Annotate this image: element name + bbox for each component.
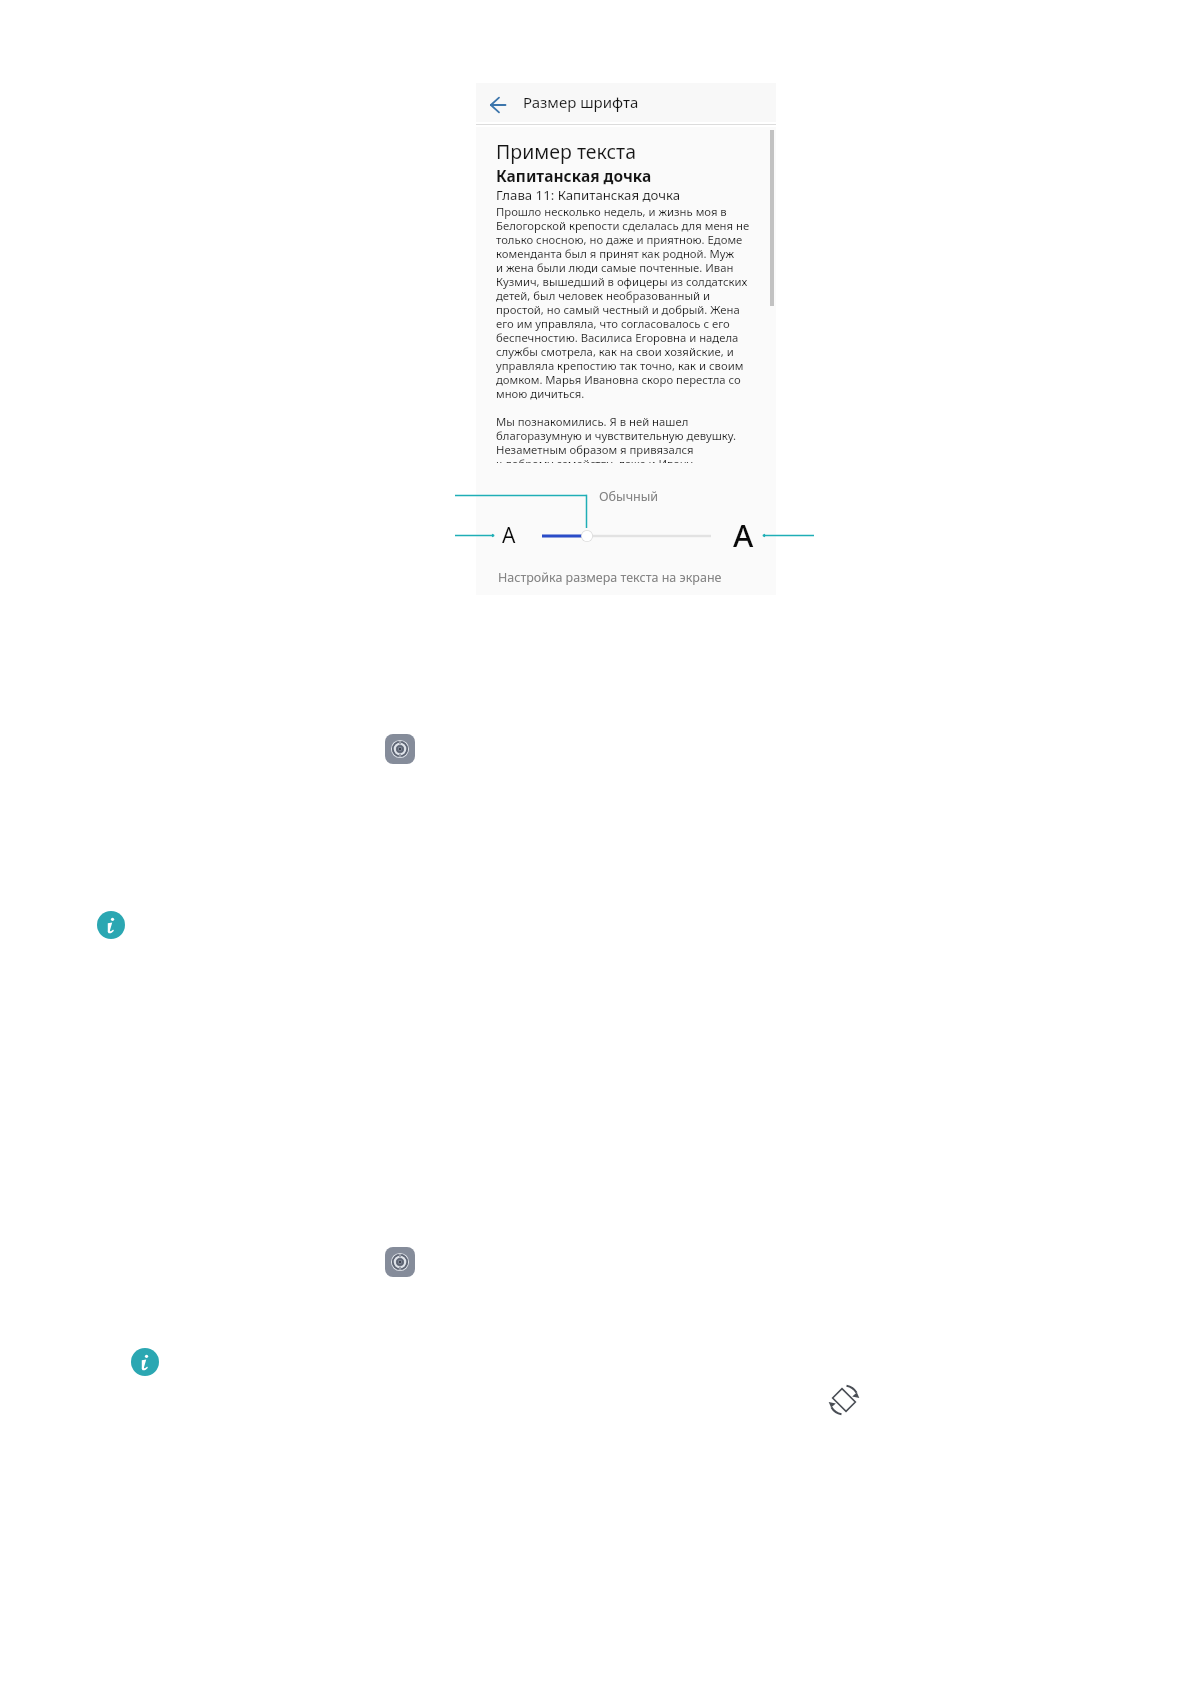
- staticText: Обычный: [599, 488, 659, 505]
- button[interactable]: Screenshot: [385, 734, 415, 764]
- button[interactable]: Screenshot: [385, 1247, 415, 1277]
- button[interactable]: Rotate screen: [824, 1380, 864, 1420]
- staticText: Пример текста: [496, 138, 637, 165]
- staticText: A: [502, 521, 516, 550]
- staticText: Глава 11: Капитанская дочка: [496, 186, 680, 204]
- staticText: Размер шрифта: [523, 92, 639, 112]
- button[interactable]: Back: [490, 96, 508, 114]
- staticText: Капитанская дочка: [496, 165, 652, 186]
- button[interactable]: Info: [97, 911, 125, 939]
- staticText: A: [733, 514, 754, 556]
- button[interactable]: Back: [476, 83, 776, 124]
- staticText: Настройка размера текста на экране: [498, 569, 722, 586]
- button[interactable]: Font size slider: [542, 527, 711, 545]
- staticText: Прошло несколько недель, и жизнь моя в Б…: [496, 204, 750, 463]
- button[interactable]: Info: [131, 1348, 159, 1376]
